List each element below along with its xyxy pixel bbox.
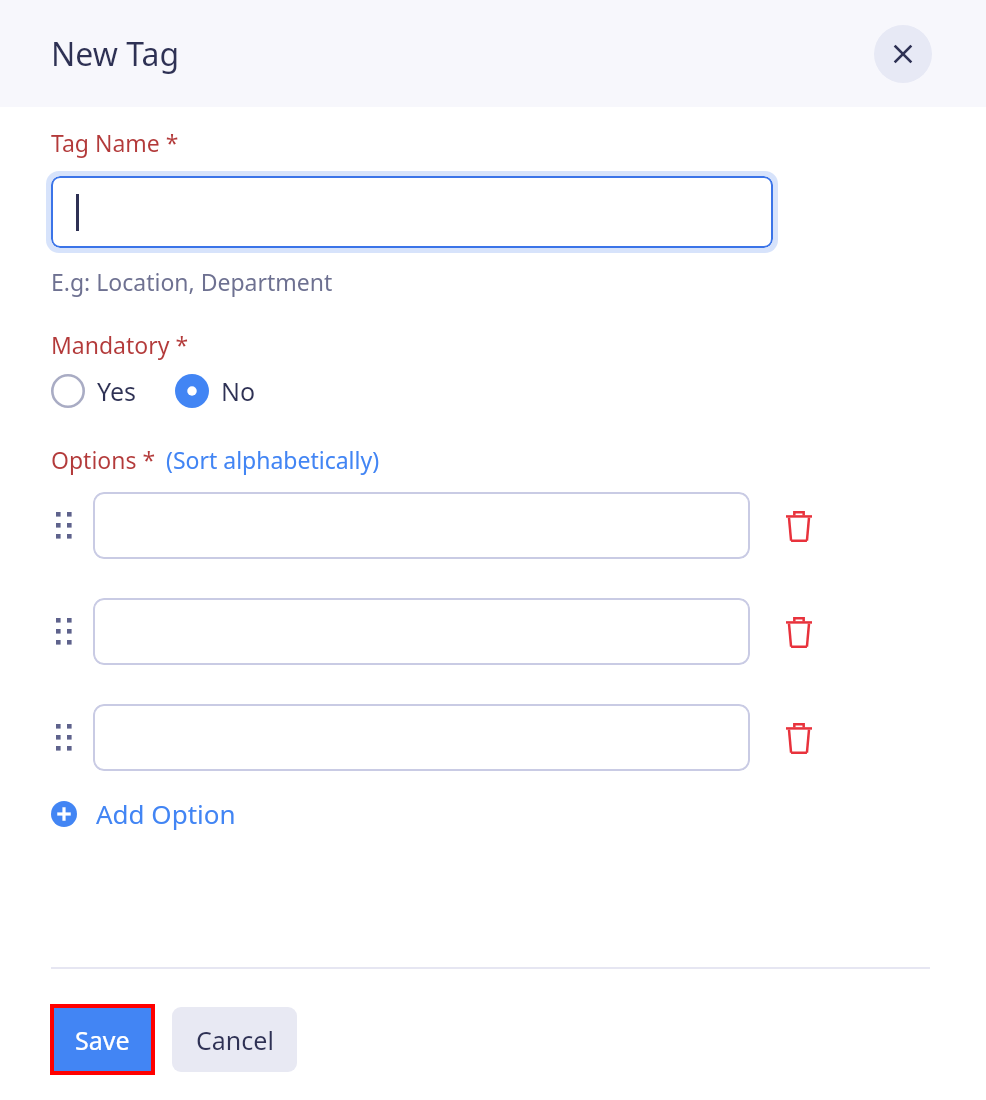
button[interactable] bbox=[93, 598, 750, 665]
staticText: (Sort alphabetically) bbox=[166, 444, 380, 475]
button[interactable]: Reorder option bbox=[47, 609, 81, 655]
button[interactable]: Delete option bbox=[773, 500, 825, 552]
staticText: Add Option bbox=[96, 796, 236, 831]
button[interactable] bbox=[93, 704, 750, 771]
button[interactable] bbox=[93, 492, 750, 559]
button[interactable]: Cancel bbox=[172, 1007, 297, 1072]
staticText: No bbox=[221, 374, 256, 408]
staticText: Mandatory * bbox=[51, 329, 189, 360]
button[interactable]: Save bbox=[54, 1008, 151, 1071]
staticText: Save bbox=[75, 1023, 130, 1057]
button[interactable]: Close bbox=[874, 25, 932, 83]
button[interactable]: Reorder option bbox=[47, 715, 81, 761]
staticText: E.g: Location, Department bbox=[51, 266, 333, 297]
staticText: Options * bbox=[51, 444, 156, 475]
button[interactable]: Delete option bbox=[773, 606, 825, 658]
staticText: Yes bbox=[97, 374, 136, 408]
button[interactable]: Delete option bbox=[773, 712, 825, 764]
button[interactable]: No bbox=[175, 374, 256, 408]
button[interactable]: Add Option bbox=[51, 796, 236, 831]
button[interactable] bbox=[51, 176, 773, 248]
button[interactable]: Reorder option bbox=[47, 503, 81, 549]
button[interactable]: (Sort alphabetically) bbox=[166, 444, 380, 475]
staticText: New Tag bbox=[51, 32, 180, 76]
button[interactable]: Yes bbox=[51, 374, 136, 408]
staticText: Cancel bbox=[196, 1023, 274, 1057]
staticText: Tag Name * bbox=[51, 127, 179, 158]
